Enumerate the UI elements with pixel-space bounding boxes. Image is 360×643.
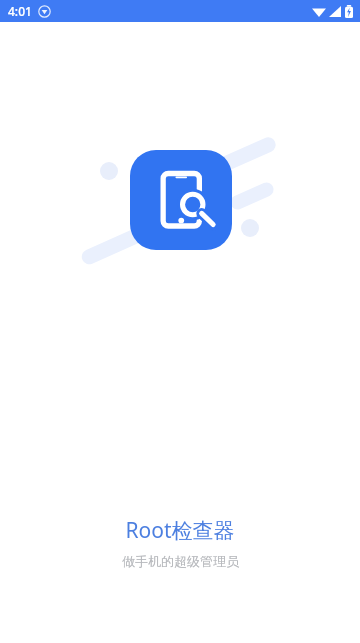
staticText: Root检查器 bbox=[125, 516, 235, 545]
staticText: 做手机的超级管理员 bbox=[122, 553, 239, 569]
staticText: 4:01 bbox=[8, 3, 32, 19]
